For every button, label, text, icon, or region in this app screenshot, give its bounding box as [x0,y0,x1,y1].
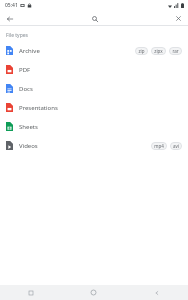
button[interactable]: Back [125,285,188,300]
button[interactable]: mp4 [151,142,167,150]
staticText: rar [172,48,179,54]
staticText: Videos [19,142,38,150]
button[interactable]: Sheets [0,117,188,136]
staticText: File types [6,32,28,39]
button[interactable]: Search [89,13,100,24]
button[interactable]: Archive [0,41,188,60]
button[interactable]: Home [62,285,125,300]
staticText: Archive [19,47,40,55]
button[interactable]: PDF [0,60,188,79]
button[interactable]: avi [170,142,182,150]
staticText: Presentations [19,104,58,112]
button[interactable]: Clear search [173,13,184,24]
staticText: Docs [19,85,33,93]
staticText: 05:41 [5,2,18,9]
staticText: Sheets [19,123,38,131]
staticText: zipx [154,48,163,54]
button[interactable]: Presentations [0,98,188,117]
button[interactable]: Docs [0,79,188,98]
staticText: mp4 [154,143,164,149]
staticText: PDF [19,66,31,74]
staticText: avi [173,143,179,149]
button[interactable]: Videos [0,136,188,155]
button[interactable]: Back [4,13,15,24]
button[interactable]: zip [135,47,148,55]
staticText: zip [138,48,145,54]
button[interactable]: rar [169,47,182,55]
button[interactable]: Recents [0,285,62,300]
button[interactable]: zipx [151,47,166,55]
